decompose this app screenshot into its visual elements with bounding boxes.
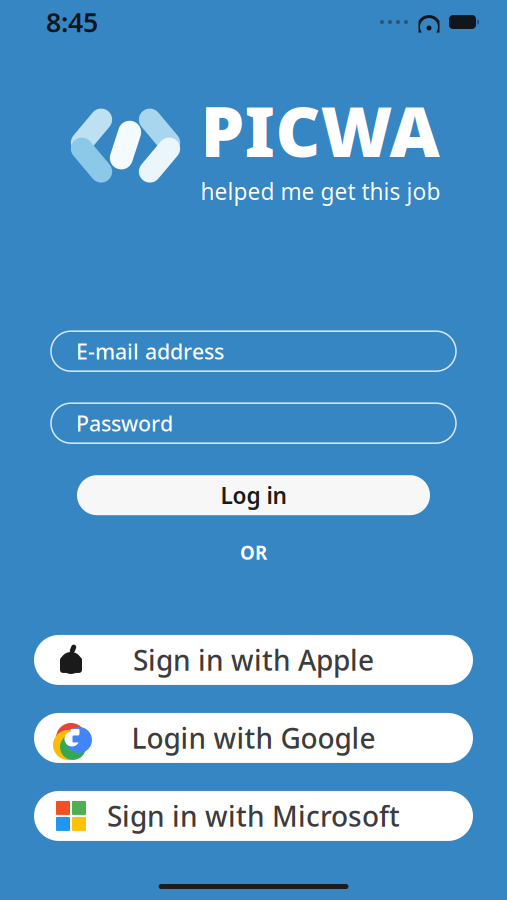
button[interactable]: Login with Google — [34, 713, 473, 763]
staticText: Sign in with Apple — [133, 641, 374, 679]
button[interactable]: Password — [51, 403, 456, 443]
staticText: Password — [76, 409, 173, 437]
staticText: OR — [240, 540, 267, 565]
staticText: Sign in with Microsoft — [107, 797, 400, 835]
staticText: PICWA — [200, 84, 439, 176]
button[interactable]: Log in — [77, 475, 430, 515]
staticText: Login with Google — [131, 719, 375, 757]
button[interactable]: Sign in with Apple — [34, 635, 473, 685]
button[interactable]: Sign in with Microsoft — [34, 791, 473, 841]
staticText: helped me get this job — [200, 176, 440, 206]
staticText: Log in — [220, 480, 286, 510]
staticText: E-mail address — [76, 337, 224, 365]
button[interactable]: E-mail address — [51, 331, 456, 371]
staticText: 8:45 — [46, 4, 98, 40]
